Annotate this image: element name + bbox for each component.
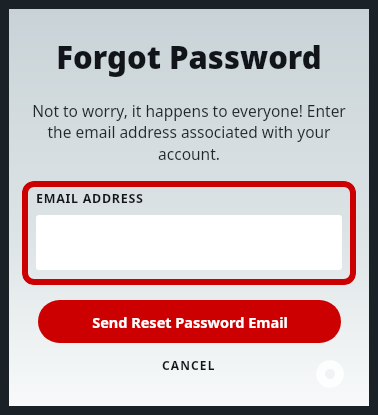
button[interactable]: Support (315, 359, 345, 389)
button[interactable]: CANCEL (148, 354, 230, 376)
staticText: Send Reset Password Email (92, 312, 288, 332)
staticText: Not to worry, it happens to everyone! En… (31, 100, 347, 165)
staticText: CANCEL (162, 357, 216, 373)
staticText: Forgot Password (9, 36, 369, 78)
button[interactable]: Send Reset Password Email (38, 300, 341, 343)
staticText: EMAIL ADDRESS (36, 190, 144, 207)
button[interactable]: EMAIL ADDRESS (22, 181, 356, 285)
